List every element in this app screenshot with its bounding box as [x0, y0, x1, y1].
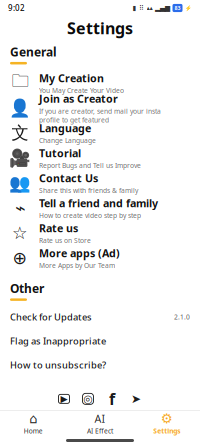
staticText: 83 [174, 4, 180, 12]
staticText: 👤 [9, 98, 31, 118]
staticText: General [10, 44, 57, 60]
button[interactable]: Facebook [100, 389, 124, 409]
staticText: AI [94, 411, 105, 426]
staticText: Contact Us [39, 171, 98, 185]
button[interactable]: Check for Updates [0, 305, 200, 329]
staticText: ⌂ [29, 411, 37, 426]
staticText: ▂▄▆ [155, 4, 170, 12]
staticText: 🎥 [9, 148, 31, 168]
staticText: Change Language [39, 136, 96, 145]
staticText: 🗀 [11, 69, 28, 97]
staticText: ▶ [60, 394, 67, 404]
button[interactable]: 🎥 [0, 145, 200, 170]
button[interactable]: Telegram [124, 389, 148, 409]
staticText: ➤ [131, 392, 141, 406]
staticText: ♥ [102, 411, 110, 421]
staticText: 9:02 [8, 3, 25, 13]
staticText: Join as Creator [39, 91, 118, 106]
button[interactable]: How to unsubscribe? [0, 353, 200, 377]
staticText: ☆ [12, 223, 28, 243]
staticText: If you are creator, send mail your insta… [39, 107, 161, 124]
staticText: AI Effect [87, 427, 113, 435]
staticText: Flag as Inappropriate [10, 335, 106, 347]
button[interactable]: AI [67, 411, 133, 437]
staticText: ⌁ [15, 198, 25, 218]
staticText: Made with [58, 411, 100, 421]
staticText: ◎ [83, 393, 92, 405]
staticText: Share this with friends & family [39, 186, 138, 195]
staticText: ⊕ [12, 248, 27, 268]
staticText: Check for Updates [10, 311, 92, 323]
staticText: Tutorial [39, 146, 81, 160]
staticText: 文 [11, 122, 28, 144]
staticText: ⚡ [185, 5, 192, 11]
button[interactable]: Flag as Inappropriate [0, 329, 200, 353]
button[interactable]: Instagram [76, 389, 100, 409]
staticText: Rate us on Store [39, 236, 91, 245]
button[interactable]: YouTube [52, 389, 76, 409]
staticText: Tell a friend and family [39, 196, 158, 210]
staticText: Settings [153, 427, 180, 435]
staticText: ⚙ [161, 411, 173, 426]
staticText: f [109, 388, 115, 409]
staticText: Privacy Policy [72, 425, 127, 436]
staticText: Report Bugs and Tell us Improve [39, 161, 141, 170]
staticText: You May Create Your Video [39, 86, 124, 95]
staticText: ▮ [132, 4, 136, 12]
button[interactable]: ⚙ [133, 411, 200, 437]
button[interactable]: ☆ [0, 220, 200, 245]
button[interactable]: 👥 [0, 170, 200, 195]
staticText: More Apps by Our Team [39, 261, 115, 270]
staticText: Other [10, 280, 44, 296]
button[interactable]: Privacy Policy [66, 424, 133, 437]
staticText: 2.1.0 [174, 312, 190, 321]
staticText: ▴▴ [146, 4, 152, 12]
staticText: Language [39, 121, 91, 135]
staticText: How to create video step by step [39, 211, 141, 220]
button[interactable]: ⊕ [0, 245, 200, 270]
staticText: My Creation [39, 71, 104, 85]
button[interactable]: ⌁ [0, 195, 200, 220]
button[interactable]: 👤 [0, 95, 200, 120]
staticText: How to unsubscribe? [10, 359, 106, 371]
button[interactable]: 🗀 [0, 70, 200, 95]
button[interactable]: ⌂ [0, 411, 67, 437]
staticText: Rate us [39, 221, 78, 235]
staticText: Home [24, 427, 43, 435]
staticText: More apps (Ad) [39, 246, 120, 260]
button[interactable]: 文 [0, 120, 200, 145]
staticText: 👥 [9, 173, 31, 193]
staticText: Settings [67, 17, 133, 39]
staticText: ⠿ [139, 4, 144, 12]
